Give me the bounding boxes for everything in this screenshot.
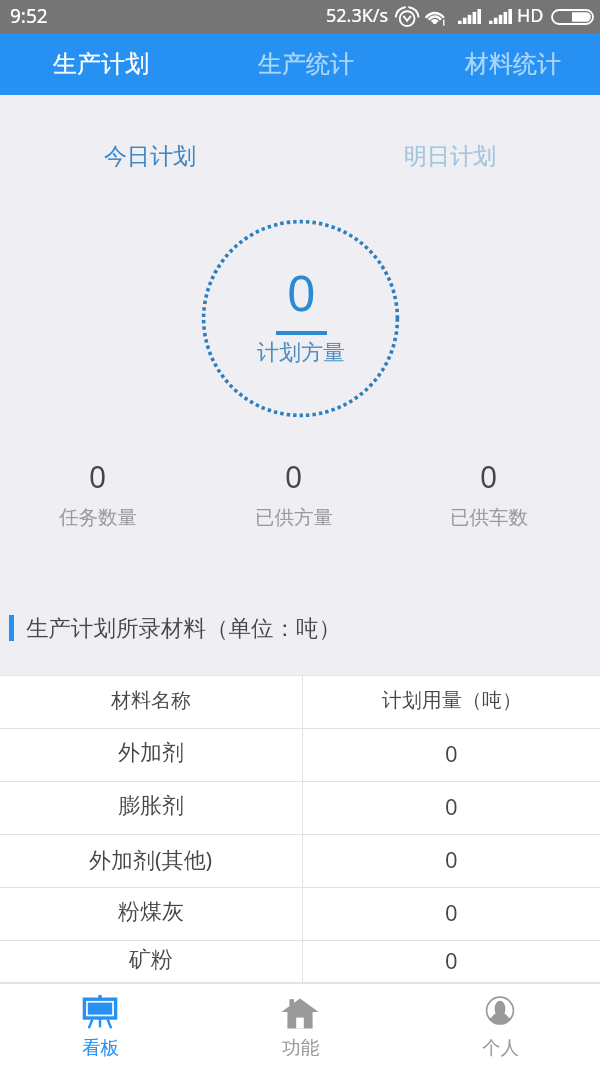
staticText: 0 — [445, 791, 458, 821]
staticText: 矿粉 — [129, 946, 173, 974]
staticText: 0 — [445, 844, 458, 874]
staticText: 0 — [445, 945, 458, 975]
staticText: 明日计划 — [404, 142, 496, 171]
staticText: 生产统计 — [258, 49, 354, 79]
staticText: 看板 — [82, 1036, 119, 1059]
staticText: 个人 — [482, 1036, 519, 1059]
button[interactable]: 明日计划 — [300, 95, 600, 187]
button[interactable]: Profile — [400, 984, 600, 1067]
staticText: 已供方量 — [255, 505, 333, 530]
staticText: 膨胀剂 — [118, 792, 184, 820]
staticText: HD — [517, 3, 544, 28]
button[interactable]: Dashboard — [0, 984, 200, 1067]
staticText: 0 — [285, 456, 303, 497]
staticText: 计划方量 — [257, 339, 345, 367]
staticText: 生产计划所录材料（单位：吨） — [26, 614, 341, 642]
staticText: 今日计划 — [104, 142, 196, 171]
button[interactable]: 生产计划 — [0, 33, 201, 95]
staticText: 已供车数 — [450, 505, 528, 530]
staticText: 材料名称 — [111, 688, 191, 713]
button[interactable]: 生产统计 — [203, 33, 409, 95]
staticText: 外加剂 — [118, 739, 184, 767]
staticText: 0 — [445, 897, 458, 927]
staticText: 粉煤灰 — [118, 898, 184, 926]
staticText: 52.3K/s — [326, 3, 389, 28]
button[interactable]: 今日计划 — [0, 95, 300, 187]
staticText: 外加剂(其他) — [89, 844, 213, 874]
staticText: 任务数量 — [59, 505, 137, 530]
button[interactable]: Functions — [200, 984, 400, 1067]
staticText: 功能 — [282, 1036, 319, 1059]
button[interactable]: 材料统计 — [417, 33, 600, 95]
staticText: 材料统计 — [465, 49, 561, 79]
staticText: 0 — [445, 738, 458, 768]
staticText: 9:52 — [10, 3, 48, 29]
staticText: 0 — [480, 456, 498, 497]
staticText: 0 — [89, 456, 107, 497]
staticText: 生产计划 — [53, 49, 149, 79]
staticText: 0 — [287, 258, 316, 326]
staticText: 计划用量（吨） — [382, 688, 522, 713]
